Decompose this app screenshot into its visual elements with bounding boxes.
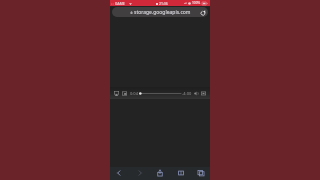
staticText: GAME	[115, 1, 125, 6]
button[interactable]: Full screen	[201, 91, 206, 96]
button[interactable]: Share	[152, 168, 168, 178]
button[interactable]: Volume	[194, 91, 199, 96]
staticText: storage.googleapis.com	[134, 9, 191, 16]
staticText: -4:00	[182, 91, 192, 96]
button[interactable]: Back	[111, 168, 127, 178]
button[interactable]: storage.googleapis.com	[112, 7, 208, 17]
staticText: 0:04	[130, 91, 138, 96]
button[interactable]: AirPlay	[114, 91, 119, 96]
button[interactable]: Reload	[199, 9, 206, 16]
button[interactable]: Picture in picture	[122, 91, 127, 96]
staticText: 21:36	[159, 1, 168, 6]
staticText: 100%	[192, 1, 201, 5]
button[interactable]: Bookmarks	[173, 168, 189, 178]
button[interactable]: Tabs	[193, 168, 209, 178]
button[interactable]: Forward	[132, 168, 148, 178]
